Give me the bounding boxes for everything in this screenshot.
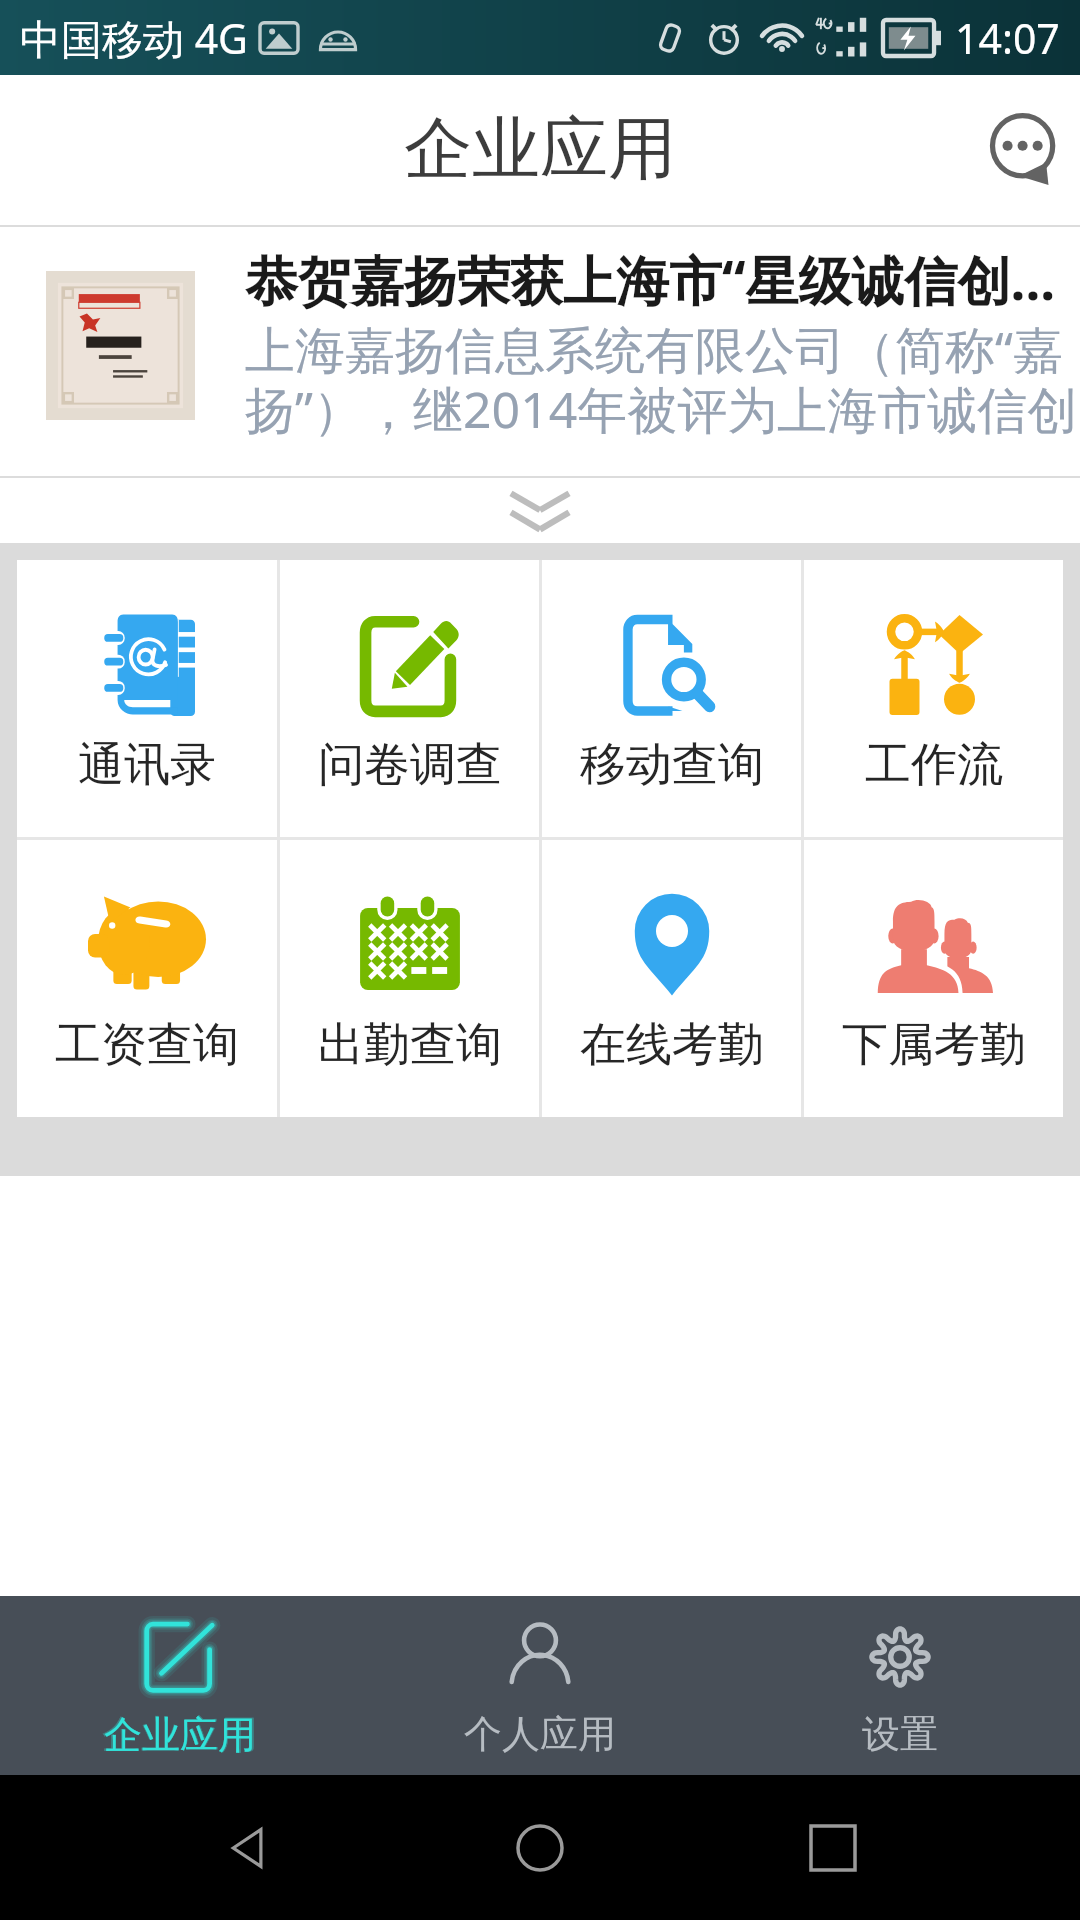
staticText: 在线考勤 (580, 1016, 764, 1074)
staticText: 问卷调查 (318, 736, 502, 794)
staticText: 下属考勤 (842, 1016, 1026, 1074)
button[interactable]: 设置 (720, 1596, 1080, 1775)
button[interactable]: 个人应用 (360, 1596, 720, 1775)
staticText: 工作流 (865, 736, 1003, 794)
staticText: 企业应用 (102, 1710, 258, 1759)
button[interactable]: 通讯录 (17, 560, 277, 837)
button[interactable]: 企业应用 (0, 1596, 360, 1775)
button[interactable]: Recents (788, 1803, 878, 1893)
button[interactable]: 下属考勤 (804, 840, 1063, 1117)
button[interactable]: 移动查询 (542, 560, 801, 837)
staticText: 恭贺嘉扬荣获上海市“星级诚信创... (245, 243, 1056, 315)
staticText: 14:07 (955, 10, 1060, 66)
staticText: 企业应用 (404, 107, 676, 193)
staticText: 上海嘉扬信息系统有限公司（简称“嘉扬”），继2014年被评为上海市诚信创 (245, 315, 1080, 443)
staticText: 个人应用 (464, 1710, 616, 1758)
staticText: 工资查询 (55, 1016, 239, 1074)
button[interactable]: Home (495, 1803, 585, 1893)
button[interactable]: 问卷调查 (280, 560, 539, 837)
button[interactable]: 在线考勤 (542, 840, 801, 1117)
button[interactable]: Back (203, 1803, 293, 1893)
button[interactable]: Expand (0, 478, 1080, 543)
button[interactable]: 恭贺嘉扬荣获上海市“星级诚信创... (0, 227, 1080, 476)
button[interactable]: 出勤查询 (280, 840, 539, 1117)
staticText: 中国移动 4G (20, 10, 248, 66)
staticText: 通讯录 (78, 736, 216, 794)
button[interactable]: 工资查询 (17, 840, 277, 1117)
button[interactable]: More options (976, 102, 1072, 198)
staticText: 出勤查询 (318, 1016, 502, 1074)
button[interactable]: 工作流 (804, 560, 1063, 837)
staticText: 企业应用 (104, 1711, 256, 1759)
staticText: 移动查询 (580, 736, 764, 794)
staticText: 设置 (862, 1710, 938, 1758)
